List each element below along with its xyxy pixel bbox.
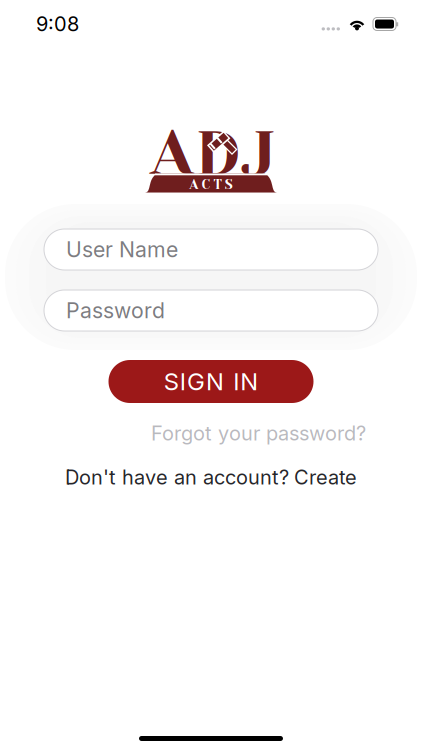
- button[interactable]: Forgot your password?: [151, 421, 366, 445]
- staticText: ADJ: [150, 117, 275, 189]
- staticText: C: [201, 177, 210, 192]
- staticText: Create: [294, 465, 357, 489]
- staticText: S: [225, 177, 233, 192]
- staticText: Forgot your password?: [151, 421, 366, 445]
- staticText: A: [189, 177, 198, 192]
- staticText: Don't have an account?: [65, 465, 289, 489]
- button[interactable]: SIGN IN: [108, 360, 313, 403]
- button[interactable]: Password: [44, 290, 378, 331]
- staticText: User Name: [66, 237, 178, 262]
- button[interactable]: User Name: [44, 229, 378, 270]
- staticText: Password: [66, 298, 165, 323]
- button[interactable]: Create: [294, 465, 357, 489]
- staticText: 9:08: [36, 12, 79, 36]
- staticText: SIGN IN: [164, 367, 258, 396]
- staticText: T: [214, 177, 222, 192]
